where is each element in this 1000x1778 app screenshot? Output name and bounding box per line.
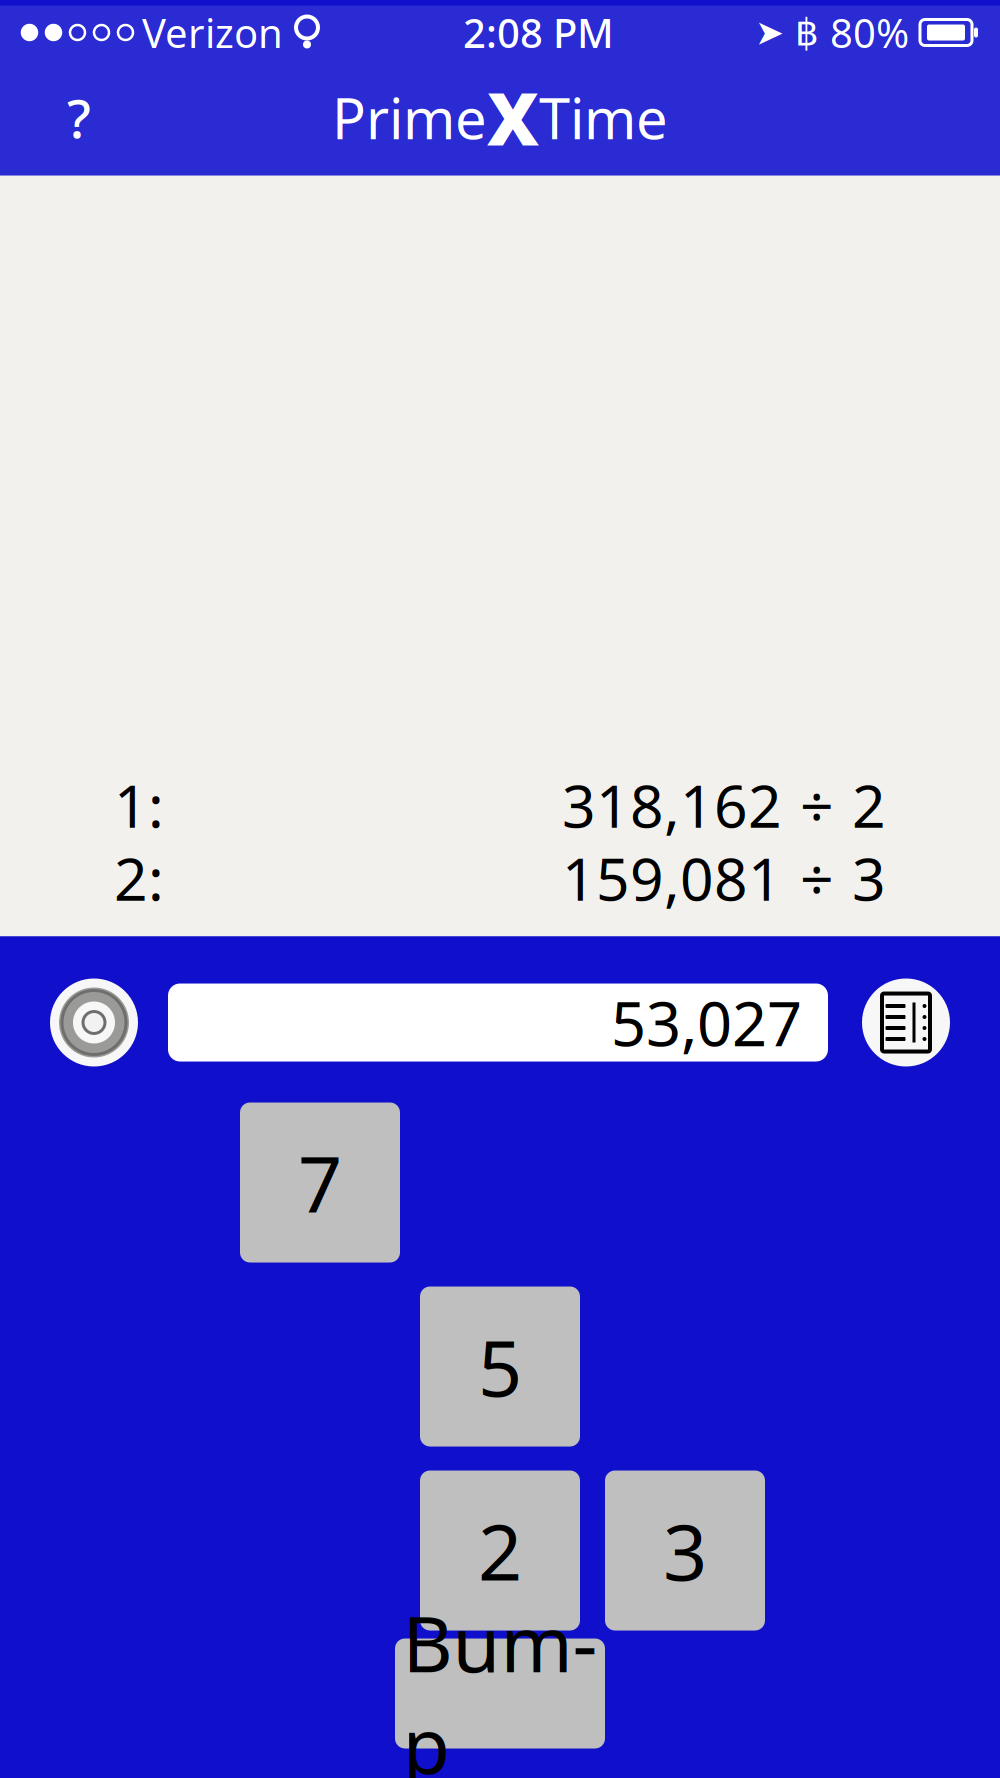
staticText: Verizon bbox=[142, 6, 283, 59]
staticText: 80% bbox=[830, 6, 909, 59]
button[interactable]: Bump bbox=[395, 1638, 605, 1748]
staticText: 318,162 bbox=[562, 766, 782, 844]
button[interactable]: 5 bbox=[420, 1286, 580, 1446]
staticText: 159,081 bbox=[562, 839, 782, 917]
staticText: ฿ bbox=[795, 11, 819, 54]
staticText: 2: bbox=[114, 839, 164, 917]
staticText: ? bbox=[67, 82, 91, 153]
staticText: 2 bbox=[852, 766, 886, 844]
button[interactable]: History bbox=[862, 978, 950, 1066]
staticText: 53,027 bbox=[611, 982, 802, 1063]
button[interactable]: Help bbox=[36, 74, 122, 160]
staticText: ➤ bbox=[755, 13, 784, 52]
staticText: ÷ bbox=[800, 766, 834, 844]
staticText: 2:08 PM bbox=[463, 6, 614, 59]
staticText: ÷ bbox=[800, 839, 834, 917]
staticText: 7 bbox=[298, 1131, 342, 1234]
staticText: 2 bbox=[478, 1499, 522, 1602]
staticText: 5 bbox=[478, 1315, 522, 1418]
staticText: Time bbox=[539, 80, 668, 155]
button[interactable]: 3 bbox=[605, 1470, 765, 1630]
button[interactable]: 2 bbox=[420, 1470, 580, 1630]
staticText: Prime bbox=[332, 80, 487, 155]
button[interactable]: Settings bbox=[50, 978, 138, 1066]
button[interactable]: 7 bbox=[240, 1102, 400, 1262]
staticText: Bump bbox=[402, 1591, 597, 1778]
staticText: X bbox=[487, 70, 539, 165]
staticText: 3 bbox=[852, 839, 886, 917]
staticText: 1: bbox=[114, 766, 164, 844]
staticText: 3 bbox=[663, 1499, 707, 1602]
